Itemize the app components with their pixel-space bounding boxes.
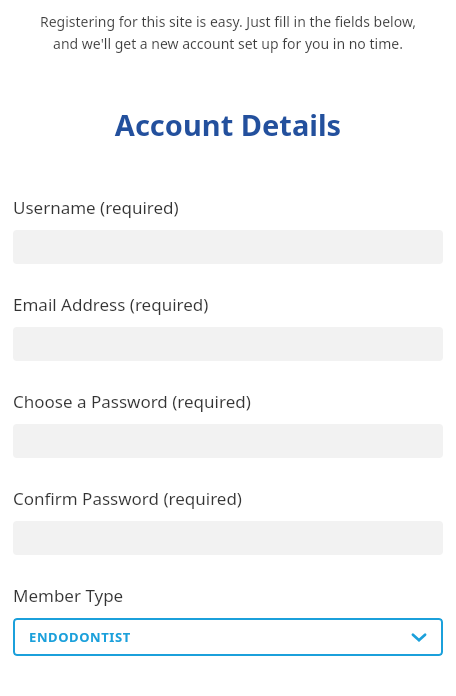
button[interactable]: ENDODONTIST [13,618,443,656]
staticText: Username (required) [13,196,179,219]
staticText: Account Details [0,105,456,144]
staticText: ENDODONTIST [29,628,131,646]
staticText: Email Address (required) [13,293,209,316]
staticText: Member Type [13,584,124,607]
staticText: Registering for this site is easy. Just … [14,12,442,53]
staticText: Choose a Password (required) [13,390,251,413]
staticText: Confirm Password (required) [13,487,242,510]
other: Open member type list [411,629,427,645]
